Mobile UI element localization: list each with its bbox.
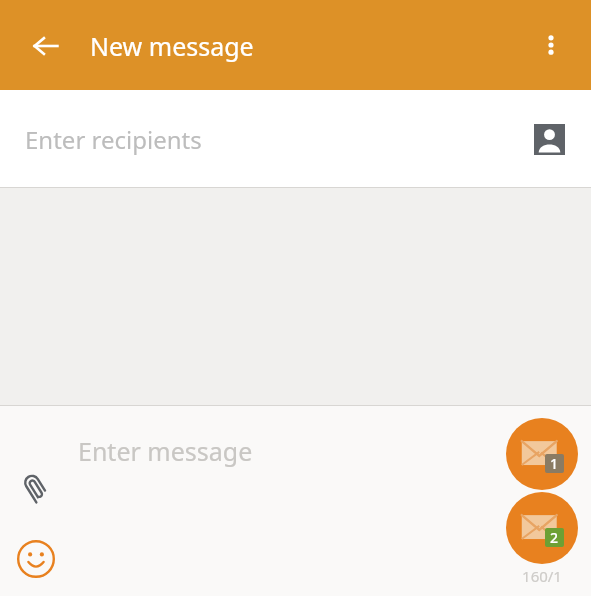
button[interactable]: Pick contacts	[527, 117, 571, 161]
staticText: Enter message	[78, 434, 253, 468]
button[interactable]: Attach file	[8, 461, 64, 517]
button[interactable]: Insert emoji	[8, 531, 64, 587]
staticText: New message	[90, 29, 254, 63]
staticText: 2	[550, 528, 559, 547]
button[interactable]: Back	[22, 22, 70, 70]
staticText: 160/1	[506, 566, 578, 586]
staticText: Enter recipients	[25, 123, 202, 156]
button[interactable]: Enter recipients	[0, 90, 591, 188]
button[interactable]: Send message SIM 1	[506, 418, 578, 490]
button[interactable]: More options	[527, 21, 575, 69]
staticText: 1	[550, 454, 559, 473]
button[interactable]: Send message SIM 2	[506, 492, 578, 564]
